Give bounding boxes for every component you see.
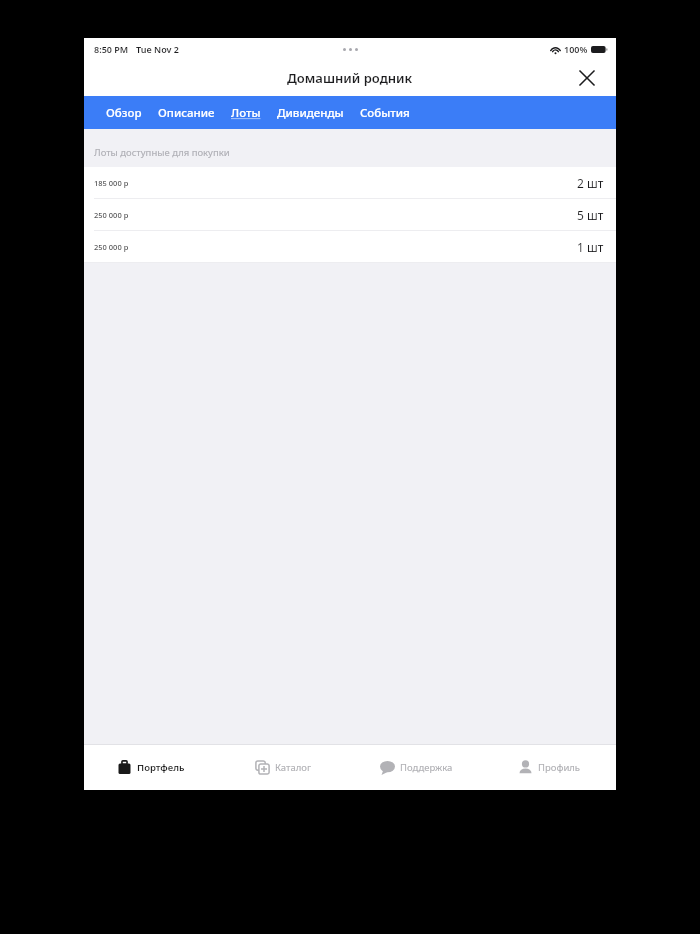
staticText: 100% <box>564 43 588 55</box>
staticText: Домашний родник <box>287 69 413 87</box>
button[interactable]: Close <box>574 65 600 91</box>
staticText: 5 шт <box>577 207 604 223</box>
staticText: 250 000 р <box>94 242 129 252</box>
button[interactable]: Каталог <box>217 745 350 790</box>
button[interactable]: События <box>352 96 418 129</box>
button[interactable]: Лоты <box>223 96 269 129</box>
staticText: Портфель <box>137 761 185 774</box>
button[interactable]: Профиль <box>483 745 616 790</box>
staticText: 2 шт <box>577 175 604 191</box>
staticText: Каталог <box>275 761 312 774</box>
staticText: Поддержка <box>400 761 453 774</box>
staticText: 1 шт <box>577 239 604 255</box>
staticText: 8:50 PM <box>94 43 129 55</box>
button[interactable]: Поддержка <box>350 745 483 790</box>
staticText: Обзор <box>106 105 142 121</box>
staticText: 250 000 р <box>94 210 129 220</box>
staticText: Описание <box>158 105 215 121</box>
staticText: Tue Nov 2 <box>136 43 179 55</box>
button[interactable]: 250 000 р <box>84 199 616 230</box>
staticText: Дивиденды <box>277 105 344 121</box>
staticText: 185 000 р <box>94 178 129 188</box>
staticText: Лоты <box>231 105 261 121</box>
staticText: События <box>360 105 410 121</box>
button[interactable]: Описание <box>150 96 223 129</box>
button[interactable]: Дивиденды <box>269 96 352 129</box>
staticText: Лоты доступные для покупки <box>94 146 230 159</box>
button[interactable]: 185 000 р <box>84 167 616 198</box>
staticText: Профиль <box>538 761 581 774</box>
button[interactable]: Обзор <box>98 96 150 129</box>
button[interactable]: Портфель <box>84 745 217 790</box>
button[interactable]: 250 000 р <box>84 231 616 262</box>
